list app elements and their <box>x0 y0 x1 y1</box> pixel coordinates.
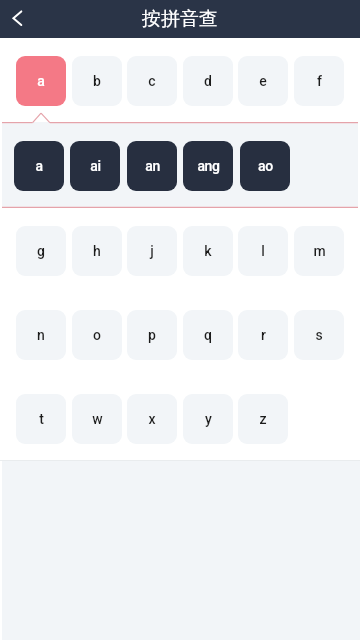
button[interactable]: r <box>238 310 288 360</box>
staticText: 按拼音查 <box>142 7 218 31</box>
button[interactable]: n <box>16 310 66 360</box>
button[interactable]: ai <box>70 141 120 191</box>
button[interactable]: h <box>72 226 122 276</box>
staticText: j <box>150 243 154 259</box>
staticText: a <box>37 73 45 89</box>
button[interactable]: ang <box>183 141 233 191</box>
button[interactable]: s <box>294 310 344 360</box>
staticText: g <box>37 243 45 259</box>
button[interactable]: o <box>72 310 122 360</box>
button[interactable]: j <box>127 226 177 276</box>
button[interactable]: t <box>16 394 66 444</box>
button[interactable]: ao <box>240 141 290 191</box>
staticText: o <box>93 327 101 343</box>
button[interactable]: l <box>238 226 288 276</box>
button[interactable]: y <box>183 394 233 444</box>
staticText: p <box>148 327 156 343</box>
staticText: z <box>259 411 267 427</box>
staticText: b <box>93 73 101 89</box>
button[interactable]: p <box>127 310 177 360</box>
button[interactable]: f <box>294 56 344 106</box>
button[interactable]: an <box>127 141 177 191</box>
button[interactable]: z <box>238 394 288 444</box>
staticText: ai <box>90 158 101 174</box>
button[interactable]: a <box>14 141 64 191</box>
button[interactable]: m <box>294 226 344 276</box>
button[interactable]: b <box>72 56 122 106</box>
staticText: m <box>313 243 326 259</box>
button[interactable]: x <box>127 394 177 444</box>
staticText: ang <box>197 158 220 174</box>
button[interactable]: q <box>183 310 233 360</box>
button[interactable]: e <box>238 56 288 106</box>
staticText: d <box>204 73 212 89</box>
staticText: q <box>204 327 212 343</box>
staticText: e <box>259 73 267 89</box>
staticText: h <box>93 243 101 259</box>
staticText: n <box>37 327 45 343</box>
staticText: w <box>92 411 103 427</box>
staticText: l <box>261 243 265 259</box>
button[interactable]: d <box>183 56 233 106</box>
staticText: an <box>145 158 160 174</box>
staticText: c <box>148 73 156 89</box>
button[interactable]: g <box>16 226 66 276</box>
staticText: k <box>204 243 212 259</box>
button[interactable]: w <box>72 394 122 444</box>
staticText: a <box>35 158 43 174</box>
staticText: s <box>315 327 323 343</box>
staticText: ao <box>258 158 273 174</box>
button[interactable]: a <box>16 56 66 106</box>
staticText: y <box>205 411 212 427</box>
button[interactable]: Back <box>0 0 38 38</box>
button[interactable]: c <box>127 56 177 106</box>
staticText: r <box>261 327 266 343</box>
staticText: t <box>39 411 44 427</box>
button[interactable]: k <box>183 226 233 276</box>
staticText: f <box>317 73 322 89</box>
staticText: x <box>148 411 156 427</box>
